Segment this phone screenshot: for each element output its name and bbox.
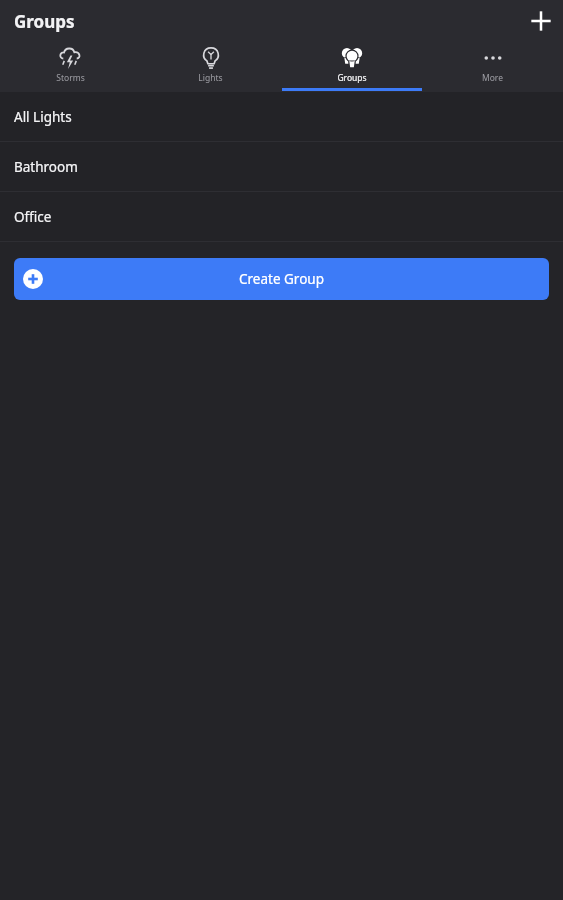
button[interactable]: Add group: [519, 0, 563, 42]
staticText: Groups: [337, 72, 367, 84]
button[interactable]: Lights: [140, 42, 281, 92]
button[interactable]: Bathroom: [0, 142, 563, 192]
staticText: Groups: [14, 10, 75, 33]
button[interactable]: Storms: [0, 42, 140, 92]
staticText: Create Group: [239, 270, 324, 288]
staticText: Storms: [56, 72, 85, 84]
button[interactable]: All Lights: [0, 92, 563, 142]
staticText: More: [482, 72, 503, 84]
staticText: Office: [14, 208, 52, 226]
button[interactable]: Groups: [281, 42, 422, 92]
button[interactable]: Create Group: [14, 258, 549, 300]
staticText: All Lights: [14, 108, 72, 126]
button[interactable]: Office: [0, 192, 563, 242]
button[interactable]: More: [422, 42, 563, 92]
staticText: Lights: [198, 72, 223, 84]
staticText: Bathroom: [14, 158, 78, 176]
